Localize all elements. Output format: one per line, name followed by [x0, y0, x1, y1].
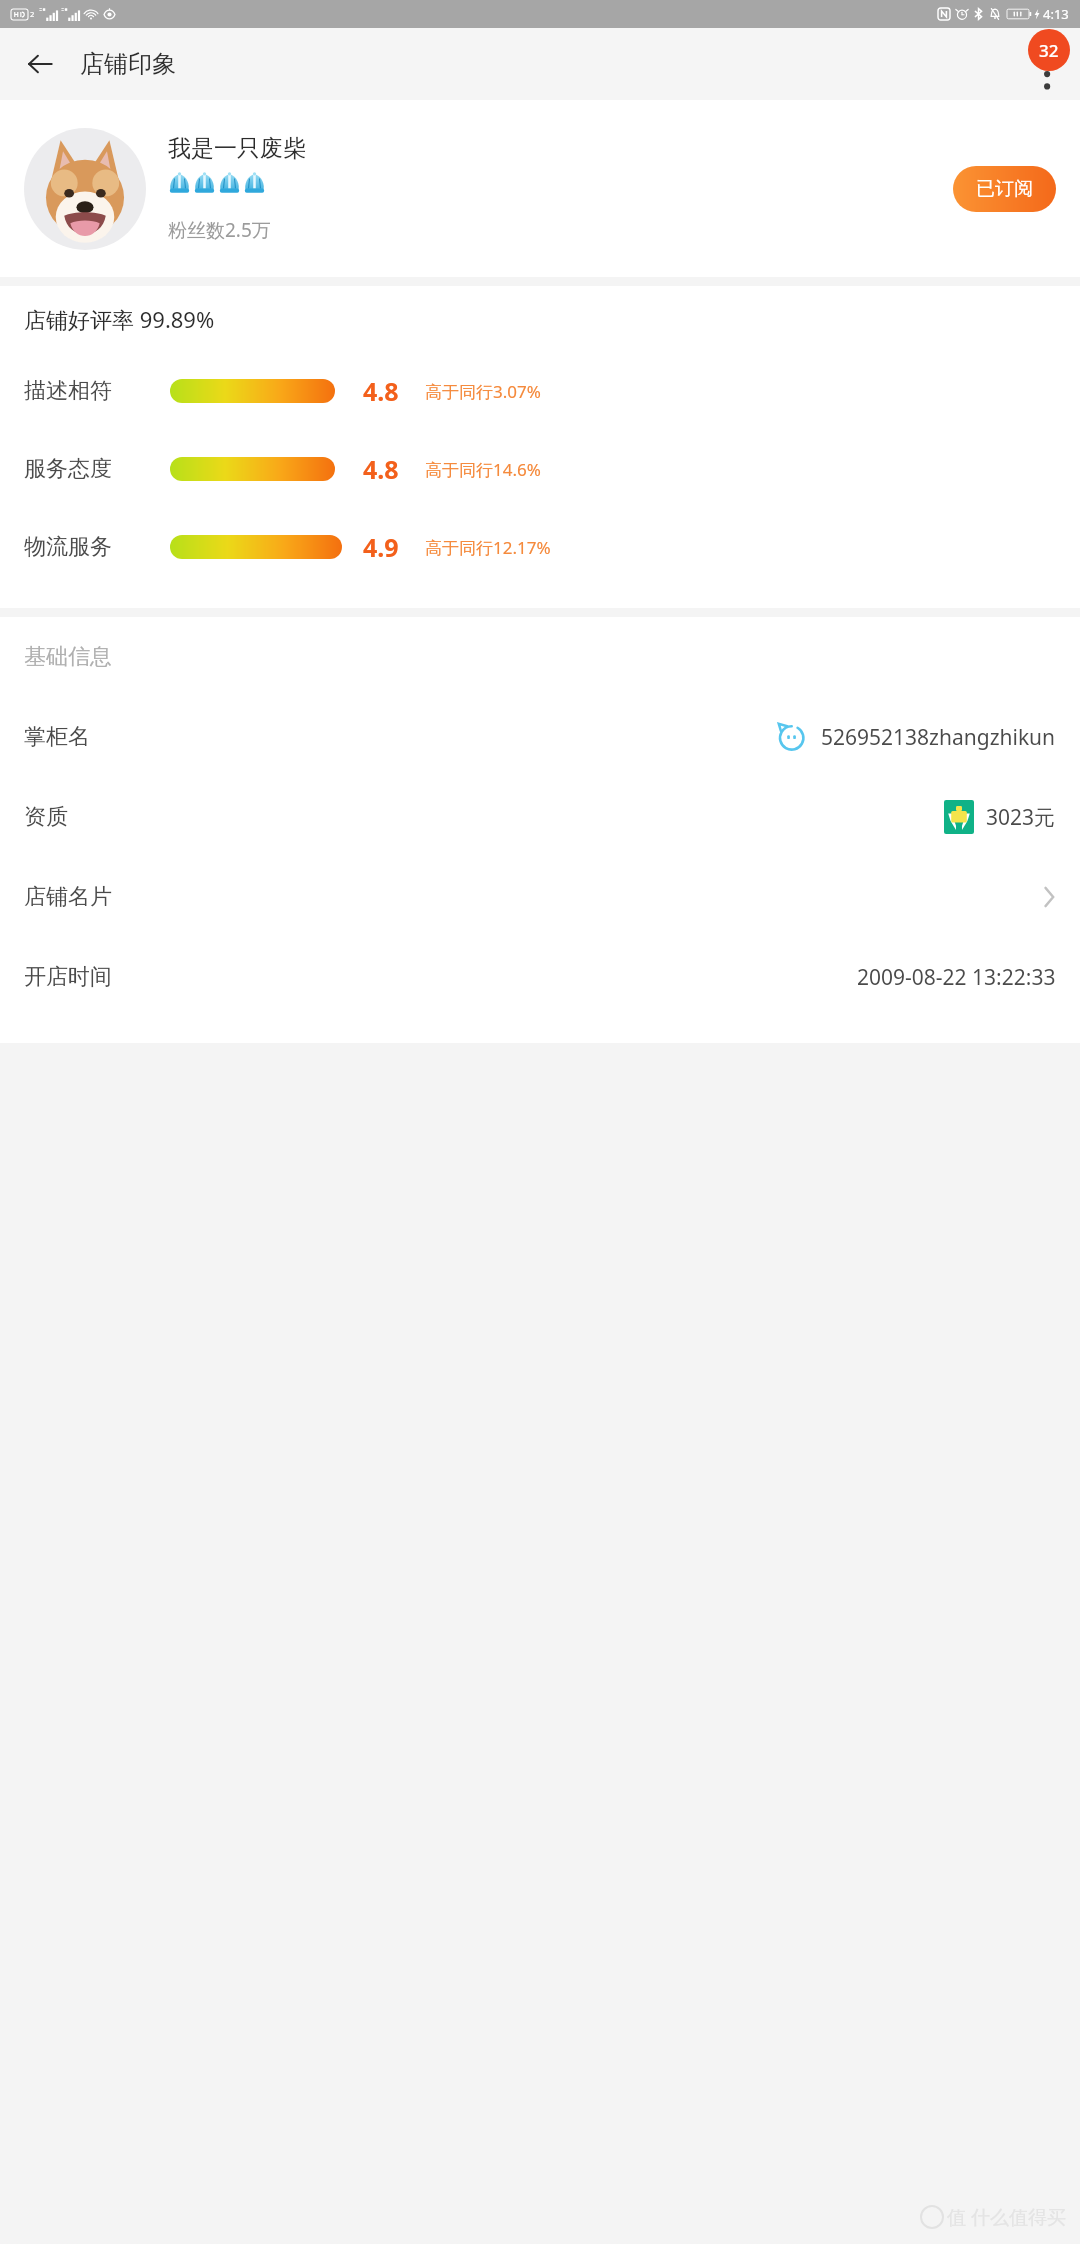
staticText: 4.8 — [363, 374, 413, 408]
staticText: 4.9 — [363, 530, 413, 564]
staticText: 2009-08-22 13:22:33 — [857, 963, 1056, 992]
staticText: 值 什么值得买 — [947, 2204, 1066, 2230]
staticText: 526952138zhangzhikun — [821, 723, 1056, 752]
staticText: 粉丝数2.5万 — [168, 217, 271, 243]
staticText: 开店时间 — [24, 963, 112, 991]
button[interactable]: 物流服务 — [0, 508, 1080, 586]
button[interactable]: 已订阅 — [953, 166, 1056, 212]
staticText: 已订阅 — [976, 177, 1033, 201]
staticText: 掌柜名 — [24, 723, 90, 751]
staticText: 3023元 — [986, 803, 1056, 832]
button[interactable]: 服务态度 — [0, 430, 1080, 508]
staticText: 2 — [30, 9, 35, 19]
button[interactable]: 掌柜名 — [0, 697, 1080, 777]
staticText: 店铺名片 — [24, 883, 112, 911]
staticText: 物流服务 — [24, 533, 156, 561]
staticText: 店铺好评率 99.89% — [24, 304, 215, 334]
staticText: 4.8 — [363, 452, 413, 486]
staticText: 我是一只废柴 — [168, 134, 306, 163]
staticText: 描述相符 — [24, 377, 156, 405]
staticText: 资质 — [24, 803, 68, 831]
staticText: 32 — [1039, 39, 1059, 62]
staticText: 店铺印象 — [80, 49, 176, 79]
button[interactable]: 描述相符 — [0, 352, 1080, 430]
button[interactable]: Back — [12, 36, 68, 92]
button[interactable]: 32 — [1028, 29, 1070, 71]
button[interactable]: More options — [1018, 36, 1074, 92]
button[interactable]: 店铺名片 — [0, 857, 1080, 937]
staticText: 高于同行12.17% — [425, 536, 551, 559]
staticText: 服务态度 — [24, 455, 156, 483]
staticText: 4:13 — [1043, 5, 1069, 23]
staticText: 高于同行14.6% — [425, 458, 541, 481]
button[interactable]: 资质 — [0, 777, 1080, 857]
staticText: 基础信息 — [24, 643, 112, 671]
button[interactable]: 开店时间 — [0, 937, 1080, 1017]
staticText: 高于同行3.07% — [425, 380, 541, 403]
